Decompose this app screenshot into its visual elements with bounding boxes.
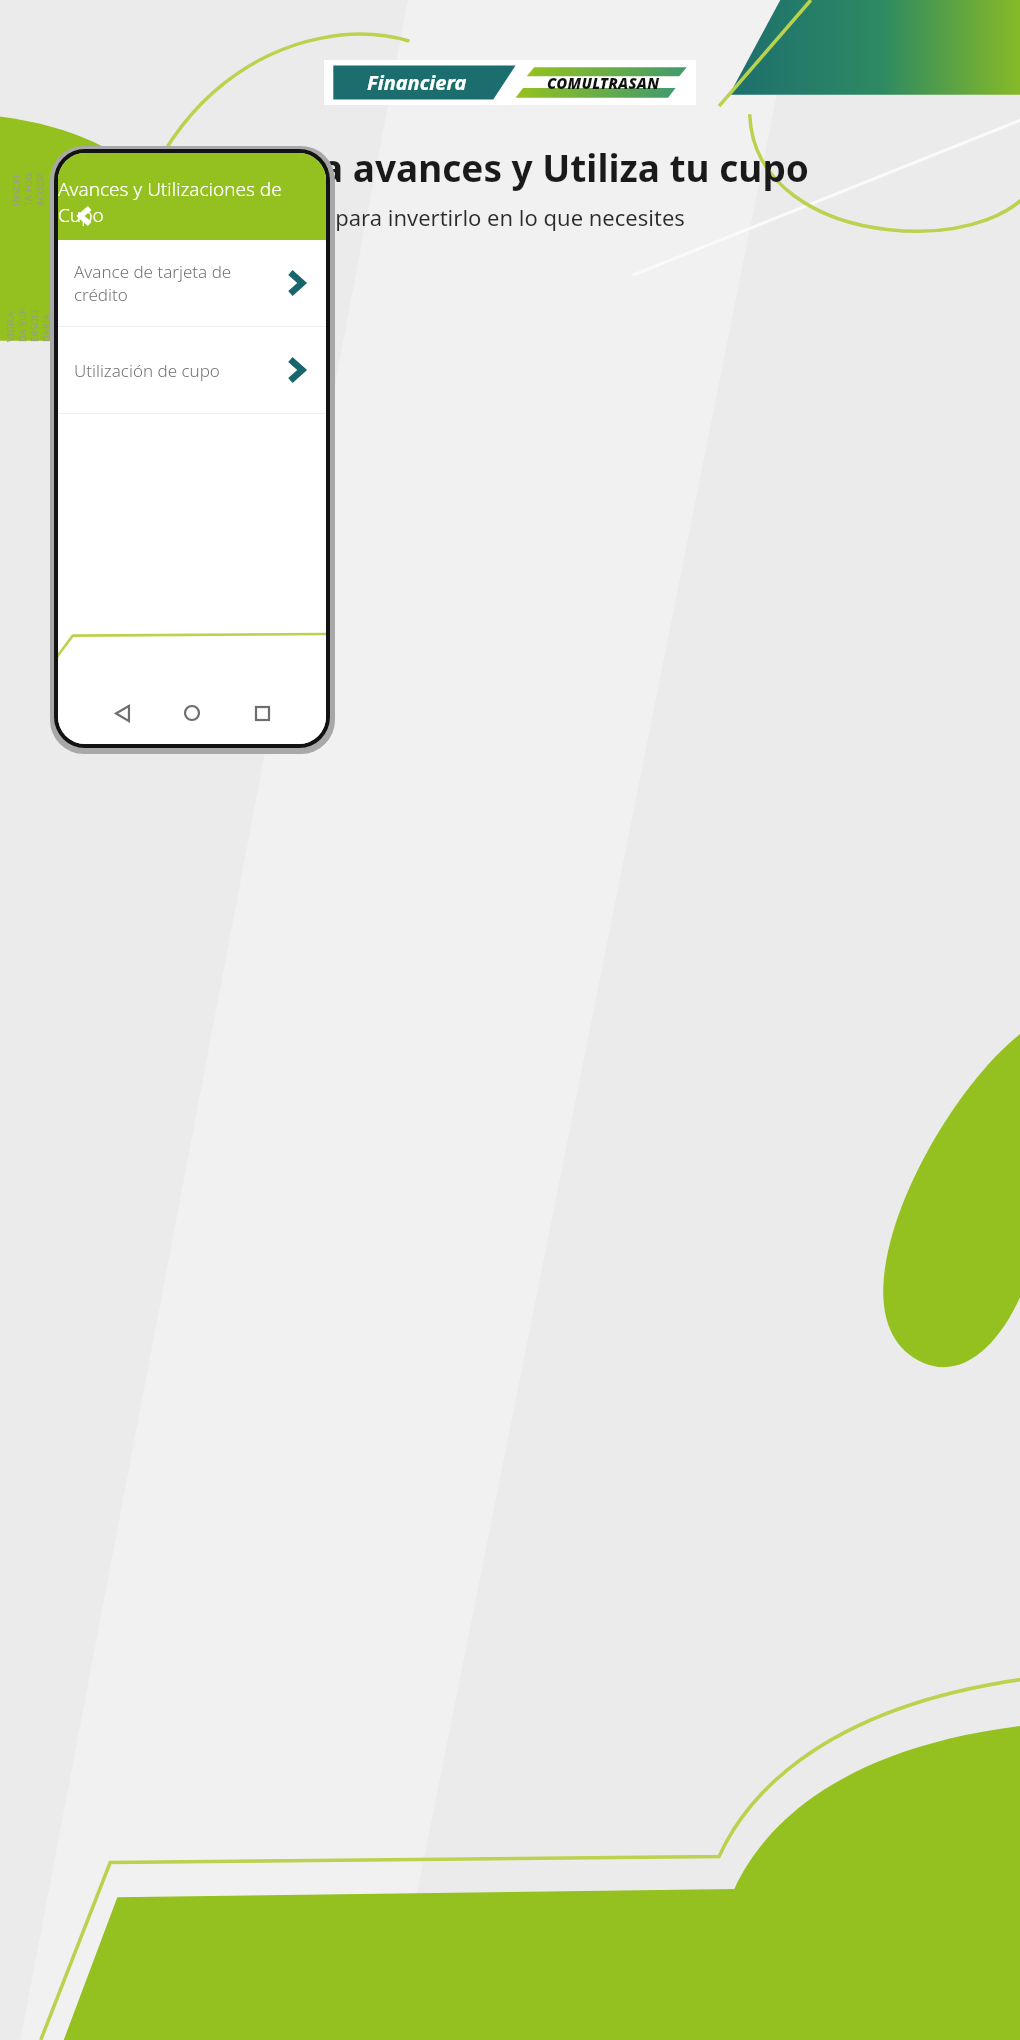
staticText: Financiera	[367, 69, 467, 96]
staticText: Realiza avances y Utiliza tu cupo	[212, 142, 809, 192]
staticText: INSCRITA FOGACOOP	[10, 170, 46, 206]
button[interactable]: Back	[62, 194, 106, 238]
button[interactable]: Home	[172, 693, 212, 733]
button[interactable]: Back	[102, 693, 142, 733]
staticText: Utilización de cupo	[74, 359, 284, 382]
staticText: Avances y Utilizaciones de Cupo	[58, 176, 326, 228]
staticText: para invertirlo en lo que necesites	[335, 202, 685, 232]
staticText: VIGILADA SUPERSOLIDARIA	[4, 306, 52, 342]
staticText: COMULTRASAN	[547, 73, 660, 93]
button[interactable]: Utilización de cupo	[58, 327, 326, 413]
button[interactable]: Avance de tarjeta de crédito	[58, 240, 326, 326]
button[interactable]: Recents	[242, 693, 282, 733]
staticText: Avance de tarjeta de crédito	[74, 260, 284, 306]
